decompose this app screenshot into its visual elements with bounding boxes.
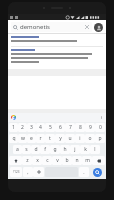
staticText: 3 [30, 124, 33, 131]
button[interactable]: 2 [18, 123, 27, 132]
button[interactable]: Clear search [84, 24, 90, 30]
button[interactable]: Voice input [33, 167, 44, 177]
staticText: e [30, 135, 33, 142]
staticText: i [79, 135, 81, 142]
staticText: . [83, 169, 85, 176]
button[interactable]: Backspace [92, 156, 105, 165]
button[interactable]: Account [94, 23, 103, 32]
button[interactable]: y [55, 134, 65, 143]
button[interactable]: u [65, 134, 75, 143]
staticText: 5 [49, 124, 52, 131]
button[interactable] [8, 47, 106, 67]
button[interactable]: z [22, 156, 32, 165]
staticText: q [12, 135, 16, 142]
staticText: 7 [69, 124, 72, 131]
staticText: b [65, 157, 69, 164]
button[interactable]: b [62, 156, 72, 165]
button[interactable]: 3 [27, 123, 36, 132]
staticText: l [94, 146, 96, 153]
button[interactable]: Symbols [10, 167, 22, 177]
button[interactable]: k [80, 145, 90, 154]
staticText: z [26, 157, 29, 164]
staticText: , [27, 169, 29, 176]
button[interactable]: 6 [55, 123, 65, 132]
button[interactable] [8, 34, 106, 46]
button[interactable]: 9 [85, 123, 95, 132]
staticText: 9 [89, 124, 92, 131]
staticText: ?123 [13, 170, 20, 174]
button[interactable]: , [23, 167, 33, 177]
staticText: 6 [59, 124, 62, 131]
staticText: s [25, 146, 28, 153]
staticText: o [88, 135, 92, 142]
button[interactable]: v [52, 156, 62, 165]
staticText: r [39, 135, 42, 142]
staticText: y [59, 135, 62, 142]
button[interactable]: w [18, 134, 27, 143]
staticText: 8 [79, 124, 82, 131]
staticText: v [56, 157, 59, 164]
button[interactable]: r [36, 134, 45, 143]
staticText: a [16, 146, 19, 153]
staticText: x [36, 157, 39, 164]
staticText: t [49, 135, 51, 142]
staticText: demonetis [20, 23, 50, 31]
button[interactable]: 0 [95, 123, 105, 132]
button[interactable]: t [45, 134, 55, 143]
button[interactable]: d [31, 145, 40, 154]
staticText: u [68, 135, 72, 142]
staticText: 2 [21, 124, 24, 131]
staticText: 4 [39, 124, 42, 131]
button[interactable]: i [75, 134, 85, 143]
button[interactable]: p [95, 134, 105, 143]
staticText: g [53, 146, 57, 153]
button[interactable]: h [60, 145, 70, 154]
staticText: f [44, 146, 46, 153]
staticText: n [75, 157, 79, 164]
button[interactable]: o [85, 134, 95, 143]
button[interactable]: a [13, 145, 22, 154]
staticText: p [98, 135, 102, 142]
button[interactable]: s [22, 145, 31, 154]
button[interactable]: l [90, 145, 100, 154]
staticText: 0 [99, 124, 102, 131]
button[interactable]: 5 [45, 123, 55, 132]
button[interactable]: q [9, 134, 18, 143]
button[interactable]: 1 [9, 123, 18, 132]
staticText: k [84, 146, 87, 153]
button[interactable]: n [72, 156, 82, 165]
button[interactable]: demonetis [11, 22, 92, 32]
button[interactable]: Shift [9, 156, 22, 165]
button[interactable]: Google [11, 115, 16, 120]
button[interactable]: c [42, 156, 52, 165]
button[interactable]: Search [93, 168, 102, 177]
staticText: d [34, 146, 38, 153]
button[interactable]: . [79, 167, 89, 177]
button[interactable]: More options [99, 114, 103, 121]
button[interactable]: 8 [75, 123, 85, 132]
button[interactable]: m [82, 156, 92, 165]
button[interactable]: x [32, 156, 42, 165]
staticText: c [46, 157, 49, 164]
button[interactable]: 7 [65, 123, 75, 132]
staticText: j [74, 146, 76, 153]
button[interactable]: g [50, 145, 60, 154]
button[interactable]: 4 [36, 123, 45, 132]
button[interactable]: j [70, 145, 80, 154]
staticText: w [21, 135, 25, 142]
button[interactable]: e [27, 134, 36, 143]
button[interactable]: f [40, 145, 50, 154]
staticText: 1 [12, 124, 15, 131]
staticText: m [85, 157, 90, 164]
staticText: h [63, 146, 67, 153]
